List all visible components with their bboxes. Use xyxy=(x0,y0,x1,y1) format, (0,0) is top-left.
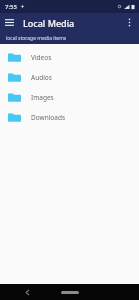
staticText: Local Media xyxy=(23,17,75,29)
staticText: Videos xyxy=(31,53,52,62)
button[interactable]: Open navigation drawer xyxy=(0,13,19,32)
button[interactable]: Videos xyxy=(0,47,139,67)
button[interactable]: Images xyxy=(0,87,139,107)
button[interactable]: Back xyxy=(22,287,32,297)
button[interactable]: More options xyxy=(120,13,139,32)
staticText: 7:55 xyxy=(5,3,17,11)
staticText: Downloads xyxy=(31,113,66,122)
button[interactable]: Home xyxy=(61,291,79,294)
staticText: local storage media items xyxy=(6,35,67,42)
staticText: Images xyxy=(31,93,54,102)
staticText: Audios xyxy=(31,73,52,82)
button[interactable]: Audios xyxy=(0,67,139,87)
button[interactable]: Downloads xyxy=(0,107,139,127)
